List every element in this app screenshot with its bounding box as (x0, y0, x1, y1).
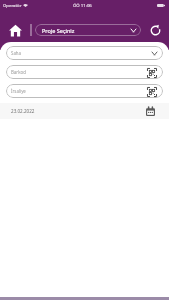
button[interactable]: Proje Seçiniz (35, 24, 141, 36)
button[interactable]: İrsaliye (6, 84, 163, 98)
button[interactable]: Home (5, 20, 25, 40)
staticText: İrsaliye (11, 88, 26, 94)
staticText: 23.02.2022 (11, 108, 35, 114)
button[interactable]: Saha (6, 46, 163, 60)
staticText: Barkod (11, 69, 26, 75)
button[interactable]: Scan barcode (146, 86, 157, 97)
staticText: Proje Seçiniz (42, 27, 75, 34)
staticText: Saha (11, 50, 22, 56)
button[interactable]: Scan barcode (146, 67, 157, 78)
button[interactable]: 23.02.2022 (0, 103, 169, 119)
staticText: Operatör (3, 2, 22, 8)
button[interactable]: Barkod (6, 65, 163, 79)
button[interactable]: Pick date (144, 105, 156, 117)
button[interactable]: Refresh (145, 20, 165, 40)
staticText: ÖÖ 11:06 (73, 2, 92, 8)
